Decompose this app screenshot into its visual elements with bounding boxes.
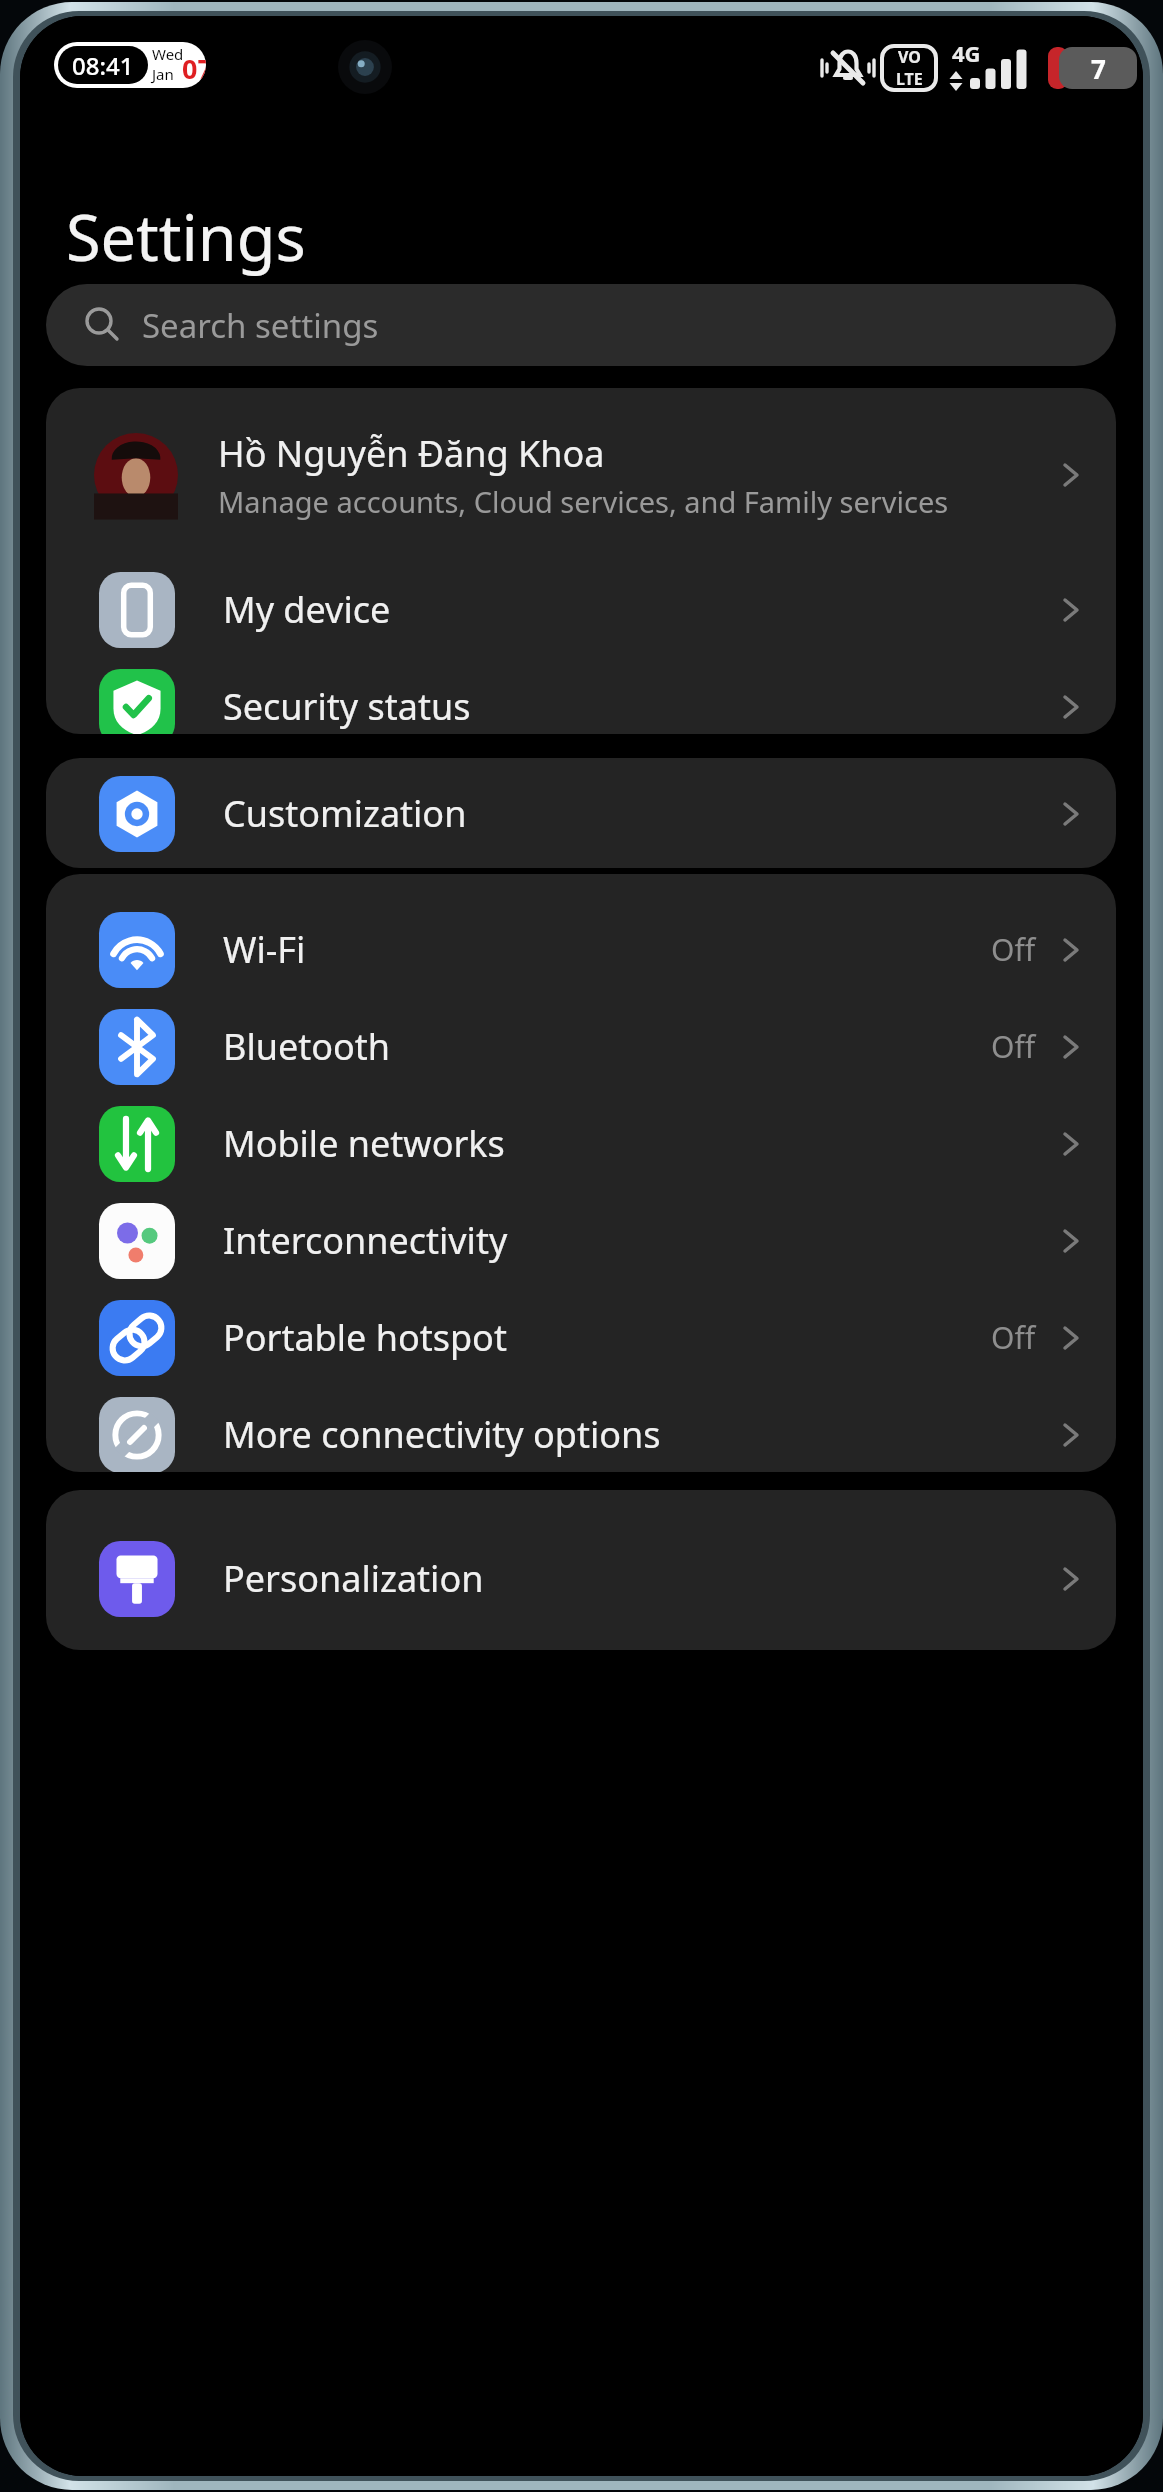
button[interactable]: Personalization	[46, 1530, 1116, 1627]
other: Portable hotspot	[99, 1300, 175, 1376]
staticText: 7	[1091, 51, 1106, 86]
staticText: Wi-Fi	[223, 925, 991, 974]
staticText: Jan	[152, 64, 174, 84]
staticText: Personalization	[223, 1554, 1054, 1603]
staticText: More connectivity options	[223, 1410, 1054, 1459]
staticText: Interconnectivity	[223, 1216, 1054, 1265]
other: My device	[99, 572, 175, 648]
button[interactable]: Security status	[46, 658, 1116, 734]
other: Bluetooth	[99, 1009, 175, 1085]
staticText: 08:41	[72, 49, 134, 82]
staticText: My device	[223, 585, 1054, 634]
staticText: VO	[898, 46, 921, 68]
staticText: Mobile networks	[223, 1119, 1054, 1168]
other: Interconnectivity	[99, 1203, 175, 1279]
staticText: Portable hotspot	[223, 1313, 991, 1362]
staticText: Security status	[223, 682, 1054, 731]
button[interactable]: Bluetooth	[46, 998, 1116, 1095]
button[interactable]: Search settings	[46, 284, 1116, 366]
other: Wi-Fi	[99, 912, 175, 988]
other: More connectivity options	[99, 1397, 175, 1472]
other: Security status	[99, 669, 175, 734]
staticText: Settings	[66, 194, 306, 280]
staticText: Search settings	[142, 303, 379, 348]
staticText: Hồ Nguyễn Đăng Khoa	[218, 429, 605, 478]
other: Customization	[99, 776, 175, 852]
staticText: 4G	[952, 38, 981, 68]
staticText: Off	[991, 1026, 1036, 1067]
button[interactable]: Portable hotspot	[46, 1289, 1116, 1386]
staticText: Off	[991, 1317, 1036, 1358]
button[interactable]: Mobile networks	[46, 1095, 1116, 1192]
other: Mobile networks	[99, 1106, 175, 1182]
staticText: Bluetooth	[223, 1022, 991, 1071]
staticText: LTE	[896, 68, 923, 90]
button[interactable]: Customization	[46, 765, 1116, 862]
staticText: 07	[182, 50, 206, 87]
staticText: Off	[991, 929, 1036, 970]
other: Personalization	[99, 1541, 175, 1617]
staticText: Wed	[152, 44, 184, 64]
button[interactable]: More connectivity options	[46, 1386, 1116, 1472]
button[interactable]: My device	[46, 561, 1116, 658]
staticText: Customization	[223, 789, 1054, 838]
button[interactable]: Wi-Fi	[46, 901, 1116, 998]
button[interactable]: Interconnectivity	[46, 1192, 1116, 1289]
staticText: Manage accounts, Cloud services, and Fam…	[218, 482, 949, 521]
button[interactable]: Hồ Nguyễn Đăng Khoa	[46, 388, 1116, 561]
